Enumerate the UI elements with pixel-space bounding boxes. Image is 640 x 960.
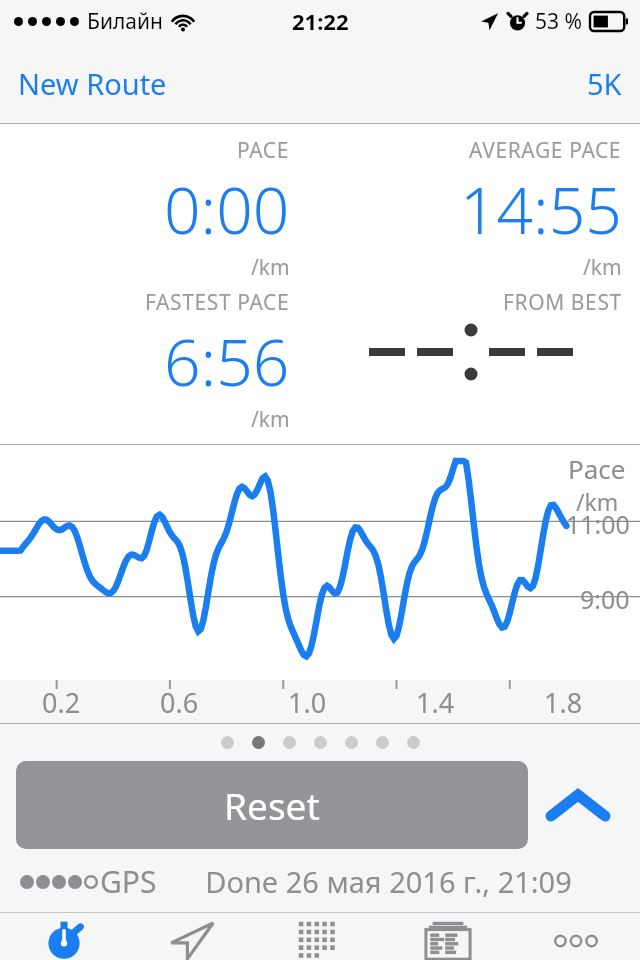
staticText: GPS [100,861,157,902]
button[interactable]: Stopwatch [0,913,128,960]
staticText: 53 % [535,7,582,36]
staticText: 1.8 [544,684,583,721]
staticText: /km [576,486,619,517]
staticText: 6:56 [164,318,290,405]
staticText: 0:00 [164,166,290,253]
staticText: FROM BEST [503,288,622,317]
button[interactable]: Expand [528,761,628,849]
staticText: /km [583,253,622,282]
button[interactable]: New Route [0,54,185,113]
button[interactable]: Calendar [256,913,384,960]
staticText: 14:55 [460,166,622,253]
staticText: 1.4 [416,684,455,721]
staticText: PACE [237,136,290,165]
button[interactable]: History [384,913,512,960]
button[interactable]: Reset [16,761,528,849]
staticText: 21:22 [292,6,349,36]
staticText: 5K [587,64,622,103]
staticText: 0.2 [42,684,81,721]
button[interactable]: Map [128,913,256,960]
staticText: Reset [224,780,320,830]
staticText: 1.0 [288,684,327,721]
staticText: AVERAGE PACE [469,136,622,165]
staticText: 9:00 [580,582,630,616]
button[interactable]: More [512,913,640,960]
staticText: 0.6 [160,684,199,721]
staticText: Билайн [87,7,163,36]
button[interactable]: 5K [569,54,640,113]
staticText: FASTEST PACE [145,288,290,317]
staticText: 11:00 [566,507,630,541]
staticText: Pace [568,451,626,486]
staticText: New Route [18,64,167,103]
staticText: /km [251,405,290,434]
staticText: Done 26 мая 2016 г., 21:09 [157,862,620,901]
staticText: /km [251,253,290,282]
